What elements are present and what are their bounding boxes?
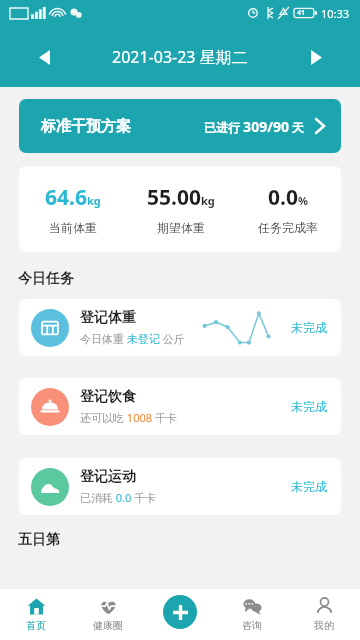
staticText: 登记运动 (80, 468, 136, 486)
staticText: 55.00kg (147, 183, 215, 212)
staticText: 未完成 (291, 399, 327, 414)
staticText: 已进行 309/90 天 (204, 117, 305, 136)
staticText: 登记饮食 (80, 388, 136, 406)
staticText: 登记体重 (80, 309, 136, 327)
button[interactable]: 我的 (288, 589, 360, 640)
staticText: 今日体重 未登记 公斤 (80, 331, 185, 346)
staticText: 我的 (314, 619, 334, 632)
staticText: 41 (297, 8, 306, 18)
staticText: 64.6kg (45, 183, 101, 212)
staticText: 已消耗 0.0 千卡 (80, 490, 157, 505)
button[interactable]: 标准干预方案 (19, 99, 341, 153)
staticText: 0.0% (268, 183, 308, 212)
staticText: 任务完成率 (258, 220, 318, 235)
button[interactable]: 登记运动 (19, 458, 341, 515)
staticText: 10:33 (321, 6, 350, 21)
staticText: 期望体重 (157, 220, 205, 235)
staticText: 当前体重 (49, 220, 97, 235)
button[interactable]: 首页 (0, 589, 72, 640)
button[interactable]: 登记体重 (19, 299, 341, 356)
button[interactable]: 咨询 (216, 589, 288, 640)
button[interactable]: Add record (163, 595, 197, 629)
staticText: 未完成 (291, 320, 327, 335)
staticText: 咨询 (242, 619, 262, 632)
button[interactable]: 登记饮食 (19, 378, 341, 435)
staticText: 还可以吃 1008 千卡 (80, 410, 177, 425)
staticText: 未完成 (291, 479, 327, 494)
staticText: 健康圈 (93, 619, 123, 632)
staticText: 2021-03-23 星期二 (112, 46, 248, 68)
button[interactable]: Previous day (24, 37, 64, 77)
staticText: 标准干预方案 (41, 117, 131, 136)
button[interactable]: Next day (296, 37, 336, 77)
button[interactable]: 健康圈 (72, 589, 144, 640)
staticText: 今日任务 (18, 270, 74, 288)
staticText: 五日第 (18, 531, 60, 549)
staticText: 首页 (26, 619, 46, 632)
